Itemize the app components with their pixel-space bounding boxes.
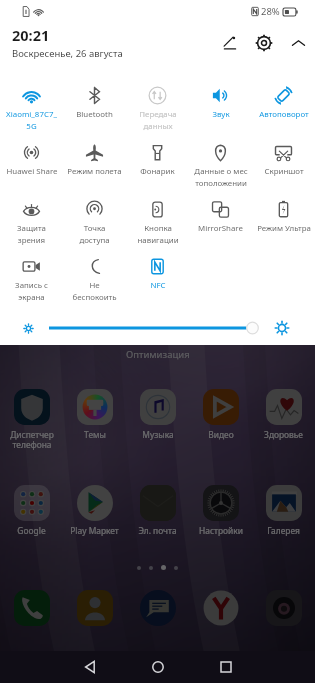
- staticText: Оптимизация: [126, 348, 190, 361]
- button[interactable]: NFC: [126, 237, 189, 294]
- button[interactable]: Settings: [247, 26, 281, 60]
- button[interactable]: Lower brightness: [19, 319, 37, 337]
- staticText: Данные о мес тоположении: [194, 166, 248, 188]
- button[interactable]: Автоповорот: [252, 66, 315, 123]
- button[interactable]: Темы: [63, 365, 126, 440]
- button[interactable]: Collapse: [281, 26, 315, 60]
- staticText: Точка доступа: [79, 223, 110, 245]
- staticText: Xiaomi_87C7_ 5G: [6, 109, 57, 131]
- staticText: Настройки: [199, 525, 243, 536]
- button[interactable]: Галерея: [252, 461, 315, 536]
- button[interactable]: Bluetooth: [63, 66, 126, 123]
- button[interactable]: Защита зрения: [0, 180, 63, 237]
- button[interactable]: Эл. почта: [126, 461, 189, 536]
- button[interactable]: Xiaomi_87C7_ 5G: [0, 66, 63, 123]
- button[interactable]: Скриншот: [252, 123, 315, 180]
- button[interactable]: Play Маркет: [63, 461, 126, 536]
- button[interactable]: Не беспокоить: [63, 237, 126, 294]
- button[interactable]: Данные о мес тоположении: [189, 123, 252, 180]
- staticText: 20:21: [12, 25, 50, 45]
- staticText: Музыка: [142, 429, 174, 440]
- staticText: Кнопка навигации: [137, 223, 179, 245]
- staticText: Huawei Share: [6, 166, 58, 177]
- staticText: Звук: [212, 109, 230, 120]
- staticText: Эл. почта: [138, 525, 177, 536]
- button[interactable]: Google: [0, 461, 63, 536]
- staticText: Автоповорот: [259, 109, 309, 120]
- staticText: Запись с экрана: [15, 280, 48, 302]
- button[interactable]: Режим Ультра: [252, 180, 315, 237]
- staticText: 28%: [261, 5, 280, 18]
- staticText: Передача данных: [139, 109, 177, 131]
- staticText: MirrorShare: [198, 223, 243, 234]
- staticText: Google: [17, 525, 46, 536]
- staticText: Диспетчер телефона: [10, 429, 54, 450]
- staticText: Фонарик: [140, 166, 175, 177]
- button[interactable]: [126, 566, 189, 626]
- button[interactable]: Huawei Share: [0, 123, 63, 180]
- staticText: Play Маркет: [70, 525, 119, 536]
- button[interactable]: Настройки: [189, 461, 252, 536]
- button[interactable]: Raise brightness: [271, 317, 293, 339]
- staticText: Здоровье: [264, 429, 303, 440]
- staticText: NFC: [150, 280, 166, 291]
- button[interactable]: Видео: [189, 365, 252, 440]
- button[interactable]: Brightness: [49, 318, 269, 338]
- button[interactable]: MirrorShare: [189, 180, 252, 237]
- button[interactable]: Музыка: [126, 365, 189, 440]
- staticText: Скриншот: [264, 166, 304, 177]
- staticText: Видео: [208, 429, 234, 440]
- staticText: Темы: [84, 429, 106, 440]
- staticText: Воскресенье, 26 августа: [12, 47, 123, 60]
- button[interactable]: Точка доступа: [63, 180, 126, 237]
- staticText: Не беспокоить: [72, 280, 117, 302]
- button[interactable]: Кнопка навигации: [126, 180, 189, 237]
- button[interactable]: Режим полета: [63, 123, 126, 180]
- button[interactable]: Фонарик: [126, 123, 189, 180]
- button[interactable]: Здоровье: [252, 365, 315, 440]
- button[interactable]: Диспетчер телефона: [0, 365, 63, 450]
- staticText: Галерея: [267, 525, 300, 536]
- button[interactable]: [63, 566, 126, 626]
- button[interactable]: [0, 566, 63, 626]
- staticText: Bluetooth: [76, 109, 113, 120]
- button[interactable]: Передача данных: [126, 66, 189, 123]
- button[interactable]: Запись с экрана: [0, 237, 63, 294]
- button[interactable]: [252, 566, 315, 626]
- button[interactable]: Звук: [189, 66, 252, 123]
- button[interactable]: Edit: [213, 26, 247, 60]
- staticText: Защита зрения: [17, 223, 46, 245]
- button[interactable]: Home: [124, 651, 192, 683]
- button[interactable]: Back: [56, 651, 124, 683]
- button[interactable]: Recents: [192, 651, 260, 683]
- button[interactable]: [189, 566, 252, 626]
- staticText: Режим полета: [67, 166, 122, 177]
- staticText: Режим Ультра: [257, 223, 311, 234]
